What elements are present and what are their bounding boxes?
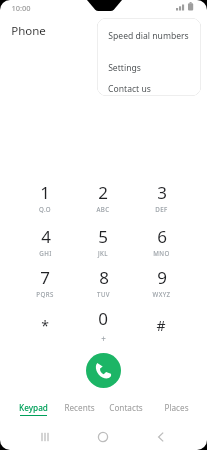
button[interactable]: Contact us: [97, 75, 201, 96]
button[interactable]: Keypad: [7, 400, 59, 420]
button[interactable]: 0: [74, 304, 132, 345]
button[interactable]: 8: [74, 263, 132, 304]
button[interactable]: 2: [74, 178, 132, 219]
button[interactable]: Recents: [33, 428, 57, 446]
staticText: Speed dial numbers: [108, 30, 189, 42]
staticText: PQRS: [36, 290, 54, 298]
button[interactable]: Recents: [53, 400, 105, 420]
staticText: MNO: [153, 249, 170, 257]
staticText: #: [156, 316, 166, 335]
staticText: *: [41, 316, 49, 335]
staticText: Phone: [11, 23, 46, 39]
staticText: Places: [164, 402, 189, 413]
button[interactable]: Back: [149, 428, 173, 446]
staticText: WXYZ: [152, 290, 171, 298]
staticText: 7: [40, 266, 50, 289]
staticText: 4: [41, 225, 51, 248]
staticText: TUV: [97, 290, 110, 298]
button[interactable]: 3: [132, 178, 190, 219]
button[interactable]: 4: [16, 222, 74, 263]
staticText: 6: [157, 225, 167, 248]
button[interactable]: Places: [150, 400, 202, 420]
staticText: GHI: [39, 249, 52, 257]
staticText: JKL: [98, 249, 108, 257]
button[interactable]: Contacts: [100, 400, 152, 420]
button[interactable]: #: [132, 304, 190, 345]
staticText: Q.O: [39, 205, 51, 213]
staticText: Recents: [64, 402, 95, 413]
button[interactable]: 7: [16, 263, 74, 304]
button[interactable]: 9: [132, 263, 190, 304]
staticText: +: [101, 333, 106, 344]
button[interactable]: Settings: [97, 43, 201, 75]
staticText: Contact us: [108, 83, 151, 95]
staticText: 0: [98, 307, 108, 330]
button[interactable]: 6: [132, 222, 190, 263]
button[interactable]: Call: [86, 353, 121, 388]
staticText: 5: [98, 225, 108, 248]
button[interactable]: *: [16, 304, 74, 345]
staticText: 9: [157, 266, 167, 289]
staticText: 1: [40, 181, 50, 204]
button[interactable]: 5: [74, 222, 132, 263]
staticText: Settings: [108, 62, 141, 74]
staticText: 10:00: [11, 3, 31, 13]
staticText: 8: [99, 266, 109, 289]
staticText: ABC: [96, 205, 110, 213]
button[interactable]: Home: [91, 428, 115, 446]
staticText: 2: [98, 181, 108, 204]
button[interactable]: 1: [16, 178, 74, 219]
staticText: DEF: [155, 205, 168, 213]
button[interactable]: Speed dial numbers: [97, 18, 201, 43]
staticText: 3: [157, 181, 167, 204]
staticText: Contacts: [109, 402, 143, 413]
staticText: Keypad: [19, 402, 48, 413]
